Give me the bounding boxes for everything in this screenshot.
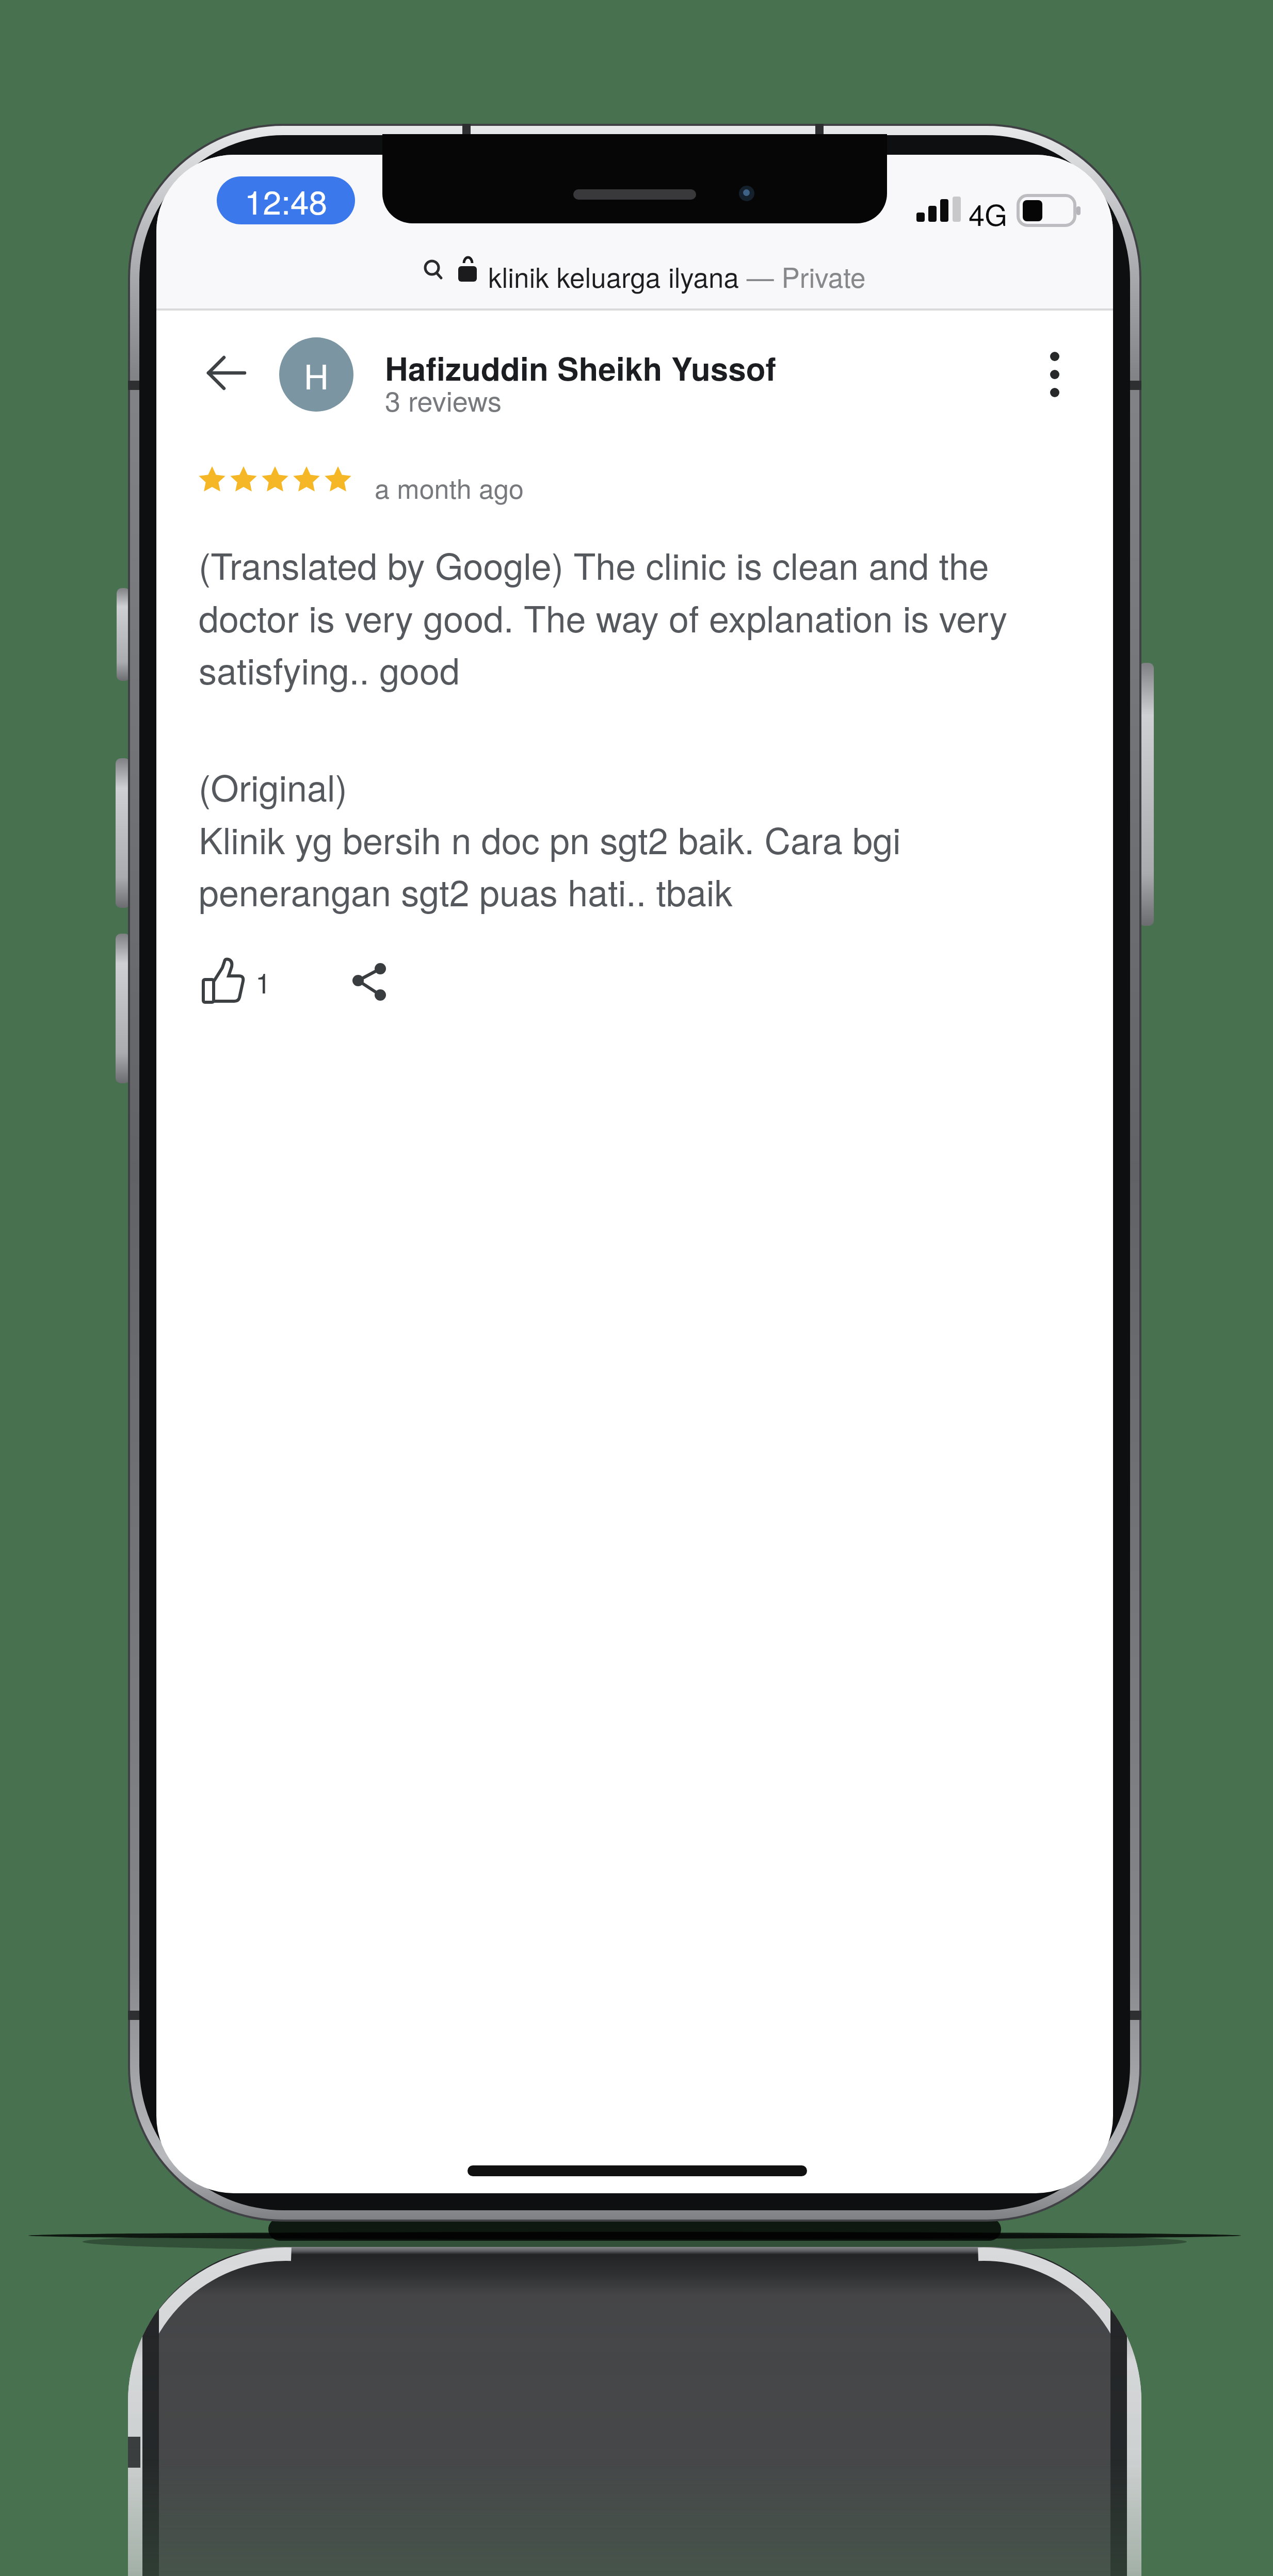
staticText: 1 <box>255 961 271 1001</box>
staticText: doctor is very good. The way of explanat… <box>199 591 1008 643</box>
staticText: 3 reviews <box>385 380 502 419</box>
button[interactable] <box>207 355 246 391</box>
button[interactable]: 12:48 <box>217 176 355 224</box>
staticText: satisfying.. good <box>199 643 460 695</box>
staticText: penerangan sgt2 puas hati.. tbaik <box>199 865 733 917</box>
button[interactable] <box>202 957 245 1001</box>
button[interactable]: H <box>279 337 353 412</box>
staticText: Klinik yg bersih n doc pn sgt2 baik. Car… <box>199 813 901 865</box>
button[interactable] <box>1047 349 1062 400</box>
staticText: 12:48 <box>245 177 328 224</box>
button[interactable] <box>351 959 388 1001</box>
staticText: a month ago <box>375 468 524 506</box>
staticText: Hafizuddin Sheikh Yussof <box>385 345 777 390</box>
staticText: H <box>304 350 329 399</box>
staticText: klinik keluarga ilyana — Private <box>488 256 866 296</box>
staticText: 4G <box>969 193 1007 234</box>
staticText: (Translated by Google) The clinic is cle… <box>199 539 989 590</box>
staticText: (Original) <box>199 760 347 812</box>
